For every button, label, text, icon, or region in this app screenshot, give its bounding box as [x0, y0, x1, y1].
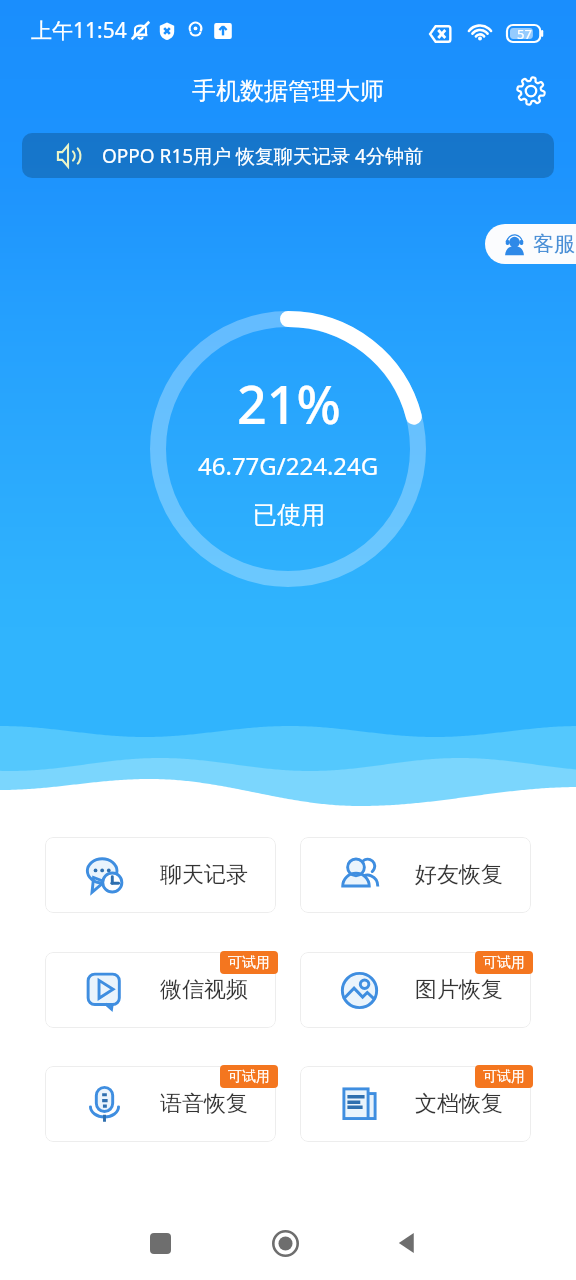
staticText: 语音恢复: [160, 1090, 248, 1118]
staticText: 可试用: [228, 954, 270, 972]
staticText: 可试用: [483, 954, 525, 972]
button[interactable]: Home: [255, 1213, 315, 1273]
staticText: 客服: [533, 231, 575, 257]
staticText: 上午11:54: [31, 16, 127, 45]
button[interactable]: Recents: [130, 1213, 190, 1273]
staticText: 文档恢复: [415, 1090, 503, 1118]
button[interactable]: 聊天记录: [45, 837, 276, 913]
staticText: 可试用: [228, 1068, 270, 1086]
staticText: 好友恢复: [415, 861, 503, 889]
staticText: 可试用: [483, 1068, 525, 1086]
staticText: OPPO R15用户 恢复聊天记录 4分钟前: [102, 143, 423, 169]
button[interactable]: 图片恢复: [300, 952, 531, 1028]
staticText: 57: [517, 25, 532, 42]
staticText: 聊天记录: [160, 861, 248, 889]
button[interactable]: 文档恢复: [300, 1066, 531, 1142]
button[interactable]: 语音恢复: [45, 1066, 276, 1142]
staticText: 微信视频: [160, 976, 248, 1004]
staticText: 已使用: [253, 500, 325, 530]
button[interactable]: Settings: [509, 69, 553, 113]
button[interactable]: 客服: [485, 224, 576, 264]
button[interactable]: 微信视频: [45, 952, 276, 1028]
staticText: 46.77G/224.24G: [198, 449, 379, 482]
button[interactable]: Back: [377, 1213, 437, 1273]
staticText: 手机数据管理大师: [192, 76, 384, 106]
staticText: 21%: [237, 368, 341, 439]
staticText: 图片恢复: [415, 976, 503, 1004]
button[interactable]: 好友恢复: [300, 837, 531, 913]
button[interactable]: OPPO R15用户 恢复聊天记录 4分钟前: [22, 133, 554, 178]
